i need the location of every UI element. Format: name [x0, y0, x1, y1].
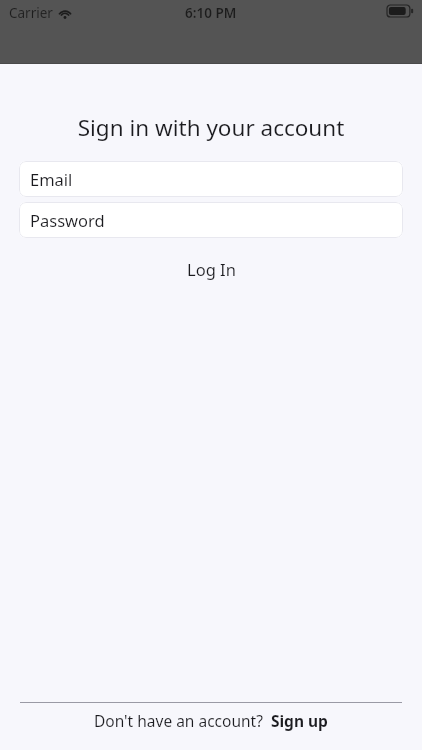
button[interactable]: Don't have an account? Sign up — [94, 710, 328, 731]
staticText: Carrier — [9, 4, 53, 22]
staticText: 6:10 PM — [185, 4, 237, 22]
staticText: Email — [30, 168, 73, 190]
staticText: Sign in with your account — [0, 112, 422, 143]
staticText: Password — [30, 209, 105, 231]
button[interactable]: Password — [19, 202, 403, 238]
button[interactable]: Log In — [0, 252, 422, 286]
staticText: Log In — [187, 258, 236, 280]
staticText: Don't have an account? Sign up — [94, 710, 328, 731]
button[interactable]: Email — [19, 161, 403, 197]
